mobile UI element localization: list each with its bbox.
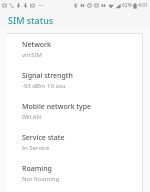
staticText: SIM status: [8, 14, 54, 26]
staticText: IWLAN: [22, 113, 42, 121]
button[interactable]: Network: [22, 38, 137, 69]
button[interactable]: Mobile network type: [22, 100, 137, 131]
button[interactable]: Roaming: [22, 162, 137, 192]
staticText: -93 dBm 10 asu: [22, 82, 66, 90]
staticText: 4:01: [138, 2, 148, 9]
staticText: Service state: [22, 133, 65, 143]
staticText: 62%: [122, 2, 132, 9]
button[interactable]: Service state: [22, 131, 137, 162]
staticText: Mobile network type: [22, 102, 92, 112]
staticText: Signal strength: [22, 71, 73, 81]
staticText: In Service: [22, 144, 50, 152]
staticText: Not Roaming: [22, 175, 60, 182]
staticText: virtSIM: [22, 51, 43, 59]
staticText: Roaming: [22, 164, 52, 174]
staticText: Network: [22, 40, 51, 50]
button[interactable]: Signal strength: [22, 69, 137, 100]
